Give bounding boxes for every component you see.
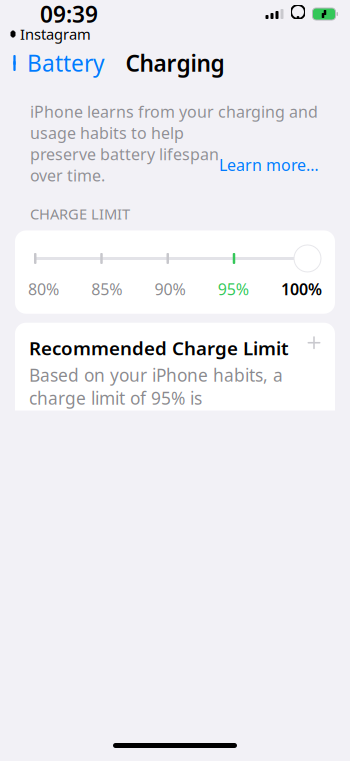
staticText: 100% xyxy=(281,278,322,300)
staticText: Recommended Charge Limit xyxy=(29,336,289,360)
staticText: Instagram xyxy=(20,24,91,44)
staticText: Charging xyxy=(125,48,224,78)
staticText: Based on your iPhone habits, a charge li… xyxy=(29,363,283,409)
staticText: 95% xyxy=(218,278,249,300)
button[interactable]: Battery xyxy=(0,42,105,84)
staticText: CHARGE LIMIT xyxy=(30,204,130,223)
staticText: Battery xyxy=(27,48,105,78)
staticText: 80% xyxy=(28,278,59,300)
staticText: 85% xyxy=(91,278,122,300)
staticText: iPhone learns from your charging and usa… xyxy=(30,101,318,143)
staticText: 09:39 xyxy=(40,0,98,29)
button[interactable]: Learn more… xyxy=(219,154,319,175)
staticText: preserve battery lifespan over time. xyxy=(30,143,219,186)
staticText: 90% xyxy=(154,278,185,300)
button[interactable]: Dismiss xyxy=(301,336,321,356)
staticText: Learn more… xyxy=(219,154,319,175)
